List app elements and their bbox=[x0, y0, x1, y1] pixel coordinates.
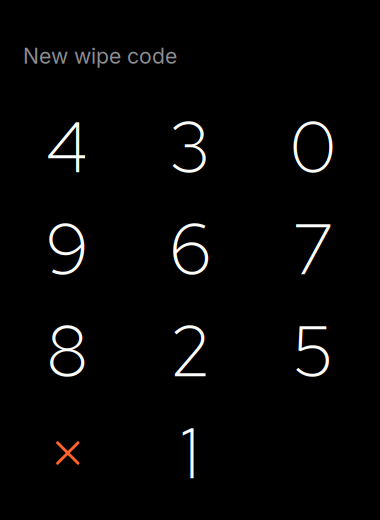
staticText: 4 bbox=[46, 100, 88, 194]
button[interactable]: 0 bbox=[251, 96, 374, 198]
button[interactable]: 9 bbox=[5, 198, 128, 300]
button[interactable]: 5 bbox=[251, 300, 374, 402]
staticText: 2 bbox=[169, 304, 211, 398]
staticText: 9 bbox=[45, 202, 88, 296]
staticText: 3 bbox=[169, 100, 211, 194]
staticText: 7 bbox=[292, 202, 334, 296]
button[interactable]: 6 bbox=[128, 198, 251, 300]
button[interactable]: 2 bbox=[128, 300, 251, 402]
button[interactable]: 3 bbox=[128, 96, 251, 198]
button[interactable]: 4 bbox=[5, 96, 128, 198]
staticText: 1 bbox=[180, 406, 199, 500]
staticText: 0 bbox=[290, 100, 336, 194]
button[interactable]: 7 bbox=[251, 198, 374, 300]
button[interactable]: 8 bbox=[5, 300, 128, 402]
button[interactable]: 1 bbox=[128, 402, 251, 504]
button[interactable]: Clear code bbox=[5, 402, 128, 504]
staticText: 5 bbox=[292, 304, 334, 398]
staticText: 6 bbox=[169, 202, 211, 296]
staticText: New wipe code bbox=[23, 43, 177, 69]
staticText: 8 bbox=[46, 304, 88, 398]
